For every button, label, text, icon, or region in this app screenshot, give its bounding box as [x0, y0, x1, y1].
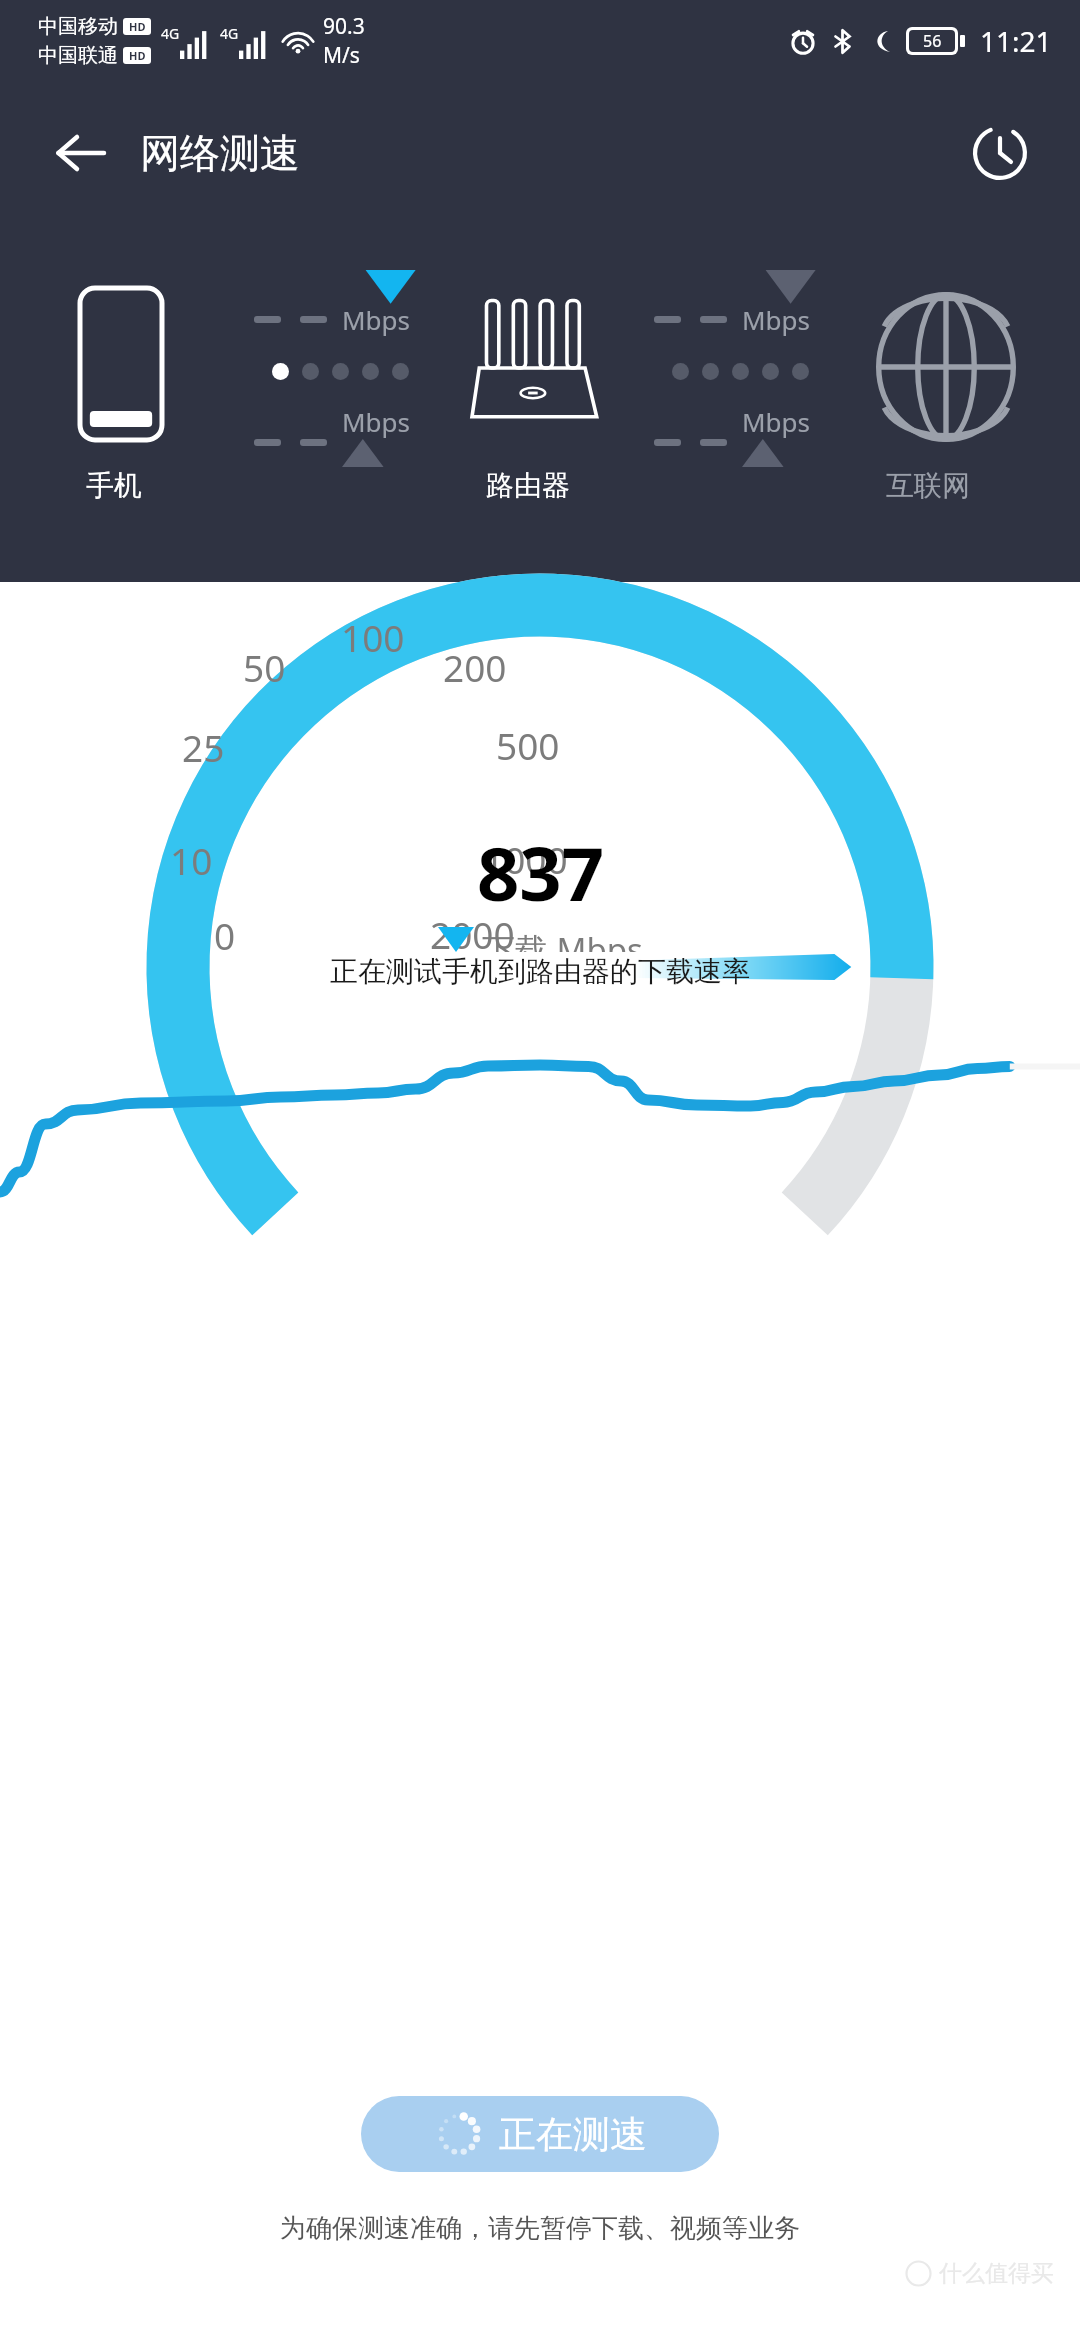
staticText: 网络测速	[140, 128, 300, 178]
staticText: 4G	[220, 24, 239, 43]
staticText: Mbps	[742, 404, 811, 439]
staticText: 正在测试手机到路由器的下载速率	[0, 954, 1080, 989]
button[interactable]: 正在测速	[361, 2096, 719, 2172]
staticText: 2000	[430, 909, 515, 959]
staticText: 50	[243, 642, 286, 692]
staticText: M/s	[323, 41, 360, 70]
staticText: 0	[214, 910, 236, 960]
staticText: 中国联通	[38, 43, 118, 68]
staticText: 25	[182, 722, 225, 772]
staticText: 正在测速	[499, 2111, 647, 2158]
staticText: 为确保测速准确，请先暂停下载、视频等业务	[280, 2212, 800, 2245]
staticText: 500	[496, 720, 560, 770]
staticText: HD	[129, 19, 146, 34]
staticText: 100	[341, 612, 405, 662]
staticText: 互联网	[886, 468, 970, 503]
button[interactable]: Back	[44, 116, 118, 190]
button[interactable]: History	[962, 115, 1038, 191]
staticText: HD	[129, 48, 146, 63]
staticText: 837	[477, 822, 604, 923]
staticText: 什么值得买	[939, 2259, 1054, 2288]
staticText: 10	[170, 835, 213, 885]
staticText: 手机	[86, 468, 142, 503]
staticText: Mbps	[342, 302, 411, 337]
staticText: Mbps	[742, 302, 811, 337]
staticText: 下载 Mbps	[482, 927, 643, 952]
staticText: 1000	[483, 834, 568, 884]
staticText: 56	[923, 30, 942, 52]
staticText: 路由器	[486, 468, 570, 503]
staticText: 4G	[161, 24, 180, 43]
staticText: 90.3	[323, 12, 365, 41]
staticText: 中国移动	[38, 14, 118, 39]
staticText: 11:21	[980, 22, 1052, 60]
staticText: 200	[443, 642, 507, 692]
staticText: Mbps	[342, 404, 411, 439]
